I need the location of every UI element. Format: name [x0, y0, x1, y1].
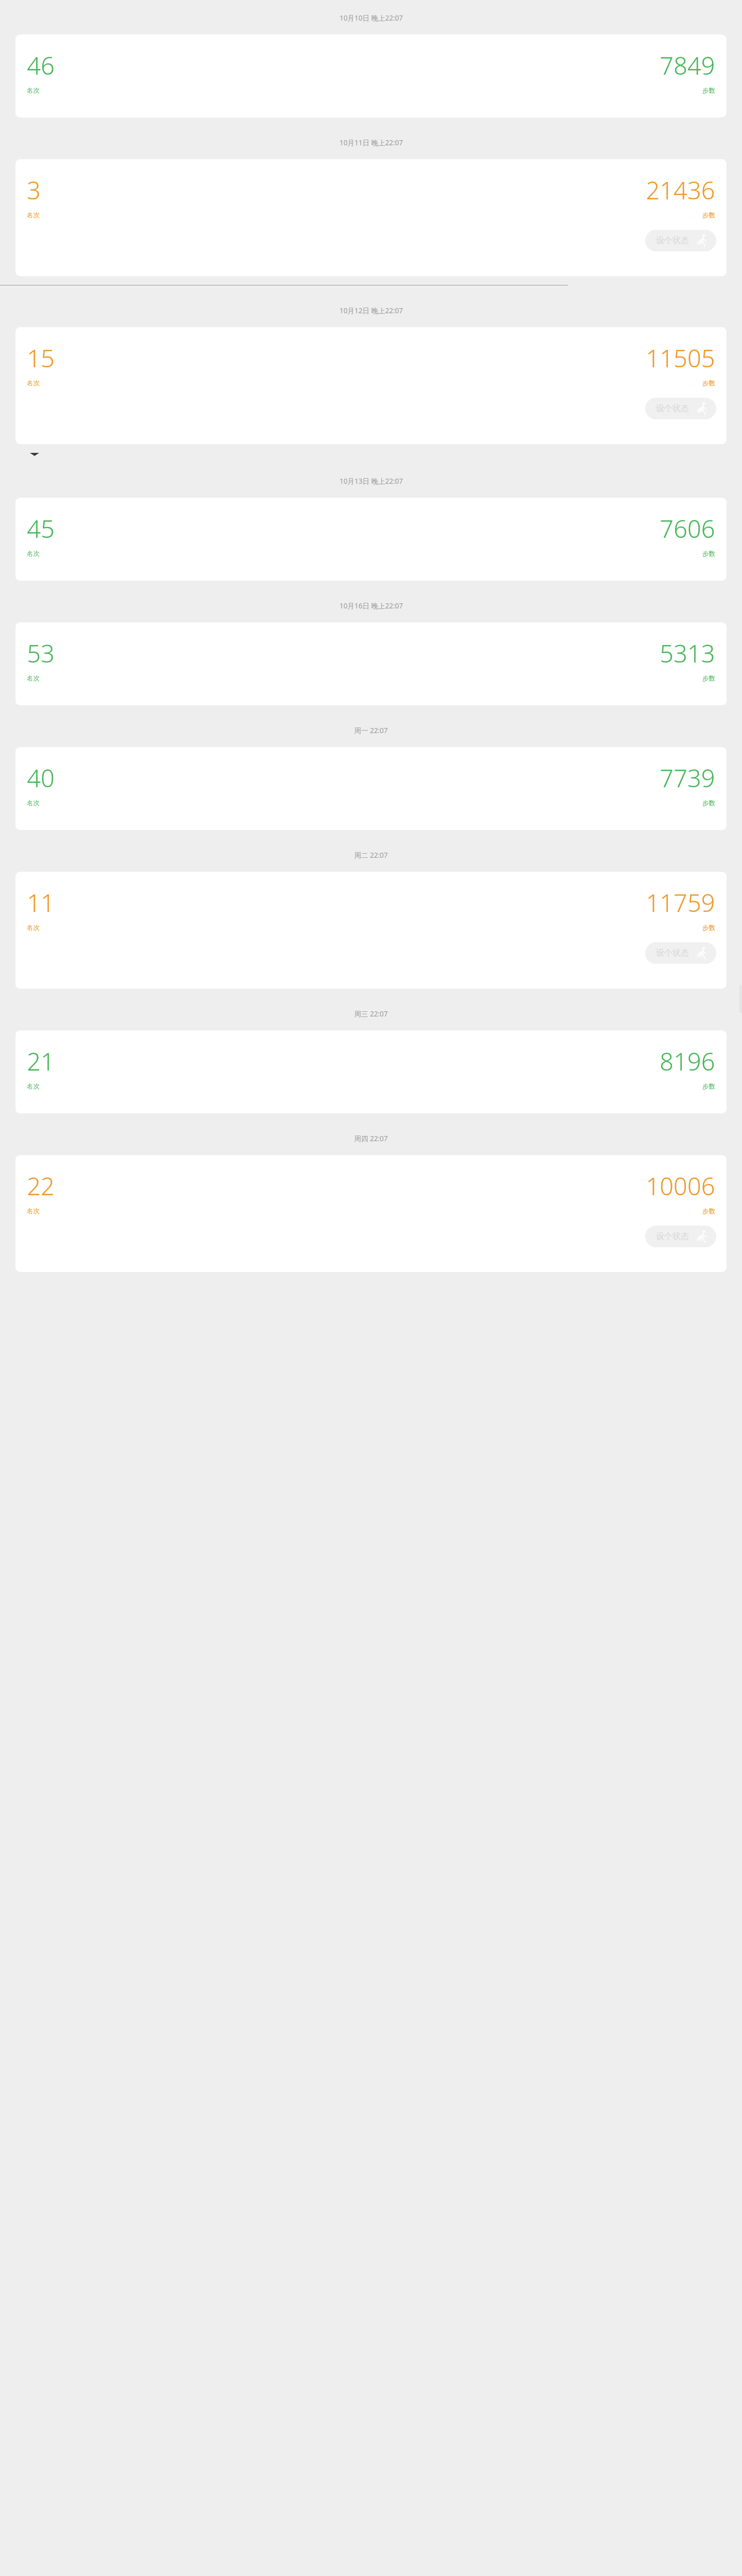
- staticText: 设个状态: [656, 235, 689, 246]
- button[interactable]: 45: [15, 498, 727, 581]
- staticText: 11505: [646, 342, 715, 375]
- button[interactable]: 21: [15, 1030, 727, 1113]
- staticText: 名次: [27, 87, 40, 95]
- staticText: 设个状态: [656, 1231, 689, 1242]
- staticText: 10月12日 晚上22:07: [340, 306, 403, 315]
- staticText: 步数: [702, 211, 715, 219]
- button[interactable]: 53: [15, 622, 727, 705]
- staticText: 3: [27, 174, 41, 207]
- staticText: 名次: [27, 550, 40, 558]
- staticText: 21: [27, 1045, 55, 1078]
- staticText: 5313: [660, 637, 715, 670]
- staticText: 10月16日 晚上22:07: [340, 601, 403, 611]
- staticText: 名次: [27, 211, 40, 219]
- staticText: 名次: [27, 1082, 40, 1091]
- other: 设个状态: [695, 1230, 709, 1243]
- staticText: 53: [27, 637, 55, 670]
- button[interactable]: 设个状态: [645, 230, 716, 251]
- staticText: 45: [27, 512, 55, 545]
- staticText: 步数: [702, 674, 715, 683]
- staticText: 周三 22:07: [354, 1009, 388, 1019]
- button[interactable]: 15: [15, 327, 727, 444]
- staticText: 步数: [702, 924, 715, 932]
- staticText: 名次: [27, 799, 40, 807]
- staticText: 步数: [702, 799, 715, 807]
- button[interactable]: 设个状态: [645, 1226, 716, 1247]
- staticText: 7849: [660, 49, 715, 82]
- staticText: 11: [27, 886, 55, 919]
- staticText: 周一 22:07: [354, 726, 388, 735]
- staticText: 11759: [646, 886, 715, 919]
- button[interactable]: 11: [15, 872, 727, 989]
- staticText: 46: [27, 49, 55, 82]
- staticText: 周二 22:07: [354, 851, 388, 860]
- button[interactable]: 40: [15, 747, 727, 830]
- staticText: 10月13日 晚上22:07: [340, 477, 403, 486]
- staticText: 步数: [702, 87, 715, 95]
- button[interactable]: 22: [15, 1155, 727, 1272]
- other: 设个状态: [695, 234, 709, 247]
- staticText: 步数: [702, 1082, 715, 1091]
- staticText: 设个状态: [656, 948, 689, 958]
- button[interactable]: 46: [15, 35, 727, 117]
- staticText: 周四 22:07: [354, 1134, 388, 1143]
- staticText: 设个状态: [656, 403, 689, 414]
- staticText: 40: [27, 761, 55, 794]
- staticText: 名次: [27, 379, 40, 387]
- other: 设个状态: [695, 946, 709, 960]
- staticText: 22: [27, 1170, 55, 1202]
- staticText: 21436: [646, 174, 715, 207]
- staticText: 步数: [702, 550, 715, 558]
- staticText: 15: [27, 342, 55, 375]
- staticText: 8196: [660, 1045, 715, 1078]
- button[interactable]: 设个状态: [645, 398, 716, 419]
- button[interactable]: 3: [15, 159, 727, 276]
- button[interactable]: 设个状态: [645, 942, 716, 964]
- staticText: 名次: [27, 674, 40, 683]
- staticText: 7606: [660, 512, 715, 545]
- staticText: 7739: [660, 761, 715, 794]
- staticText: 10月10日 晚上22:07: [340, 13, 403, 23]
- other: 设个状态: [695, 402, 709, 415]
- staticText: 10006: [646, 1170, 715, 1202]
- staticText: 步数: [702, 1207, 715, 1215]
- staticText: 名次: [27, 1207, 40, 1215]
- staticText: 步数: [702, 379, 715, 387]
- staticText: 名次: [27, 924, 40, 932]
- staticText: 10月11日 晚上22:07: [340, 138, 403, 147]
